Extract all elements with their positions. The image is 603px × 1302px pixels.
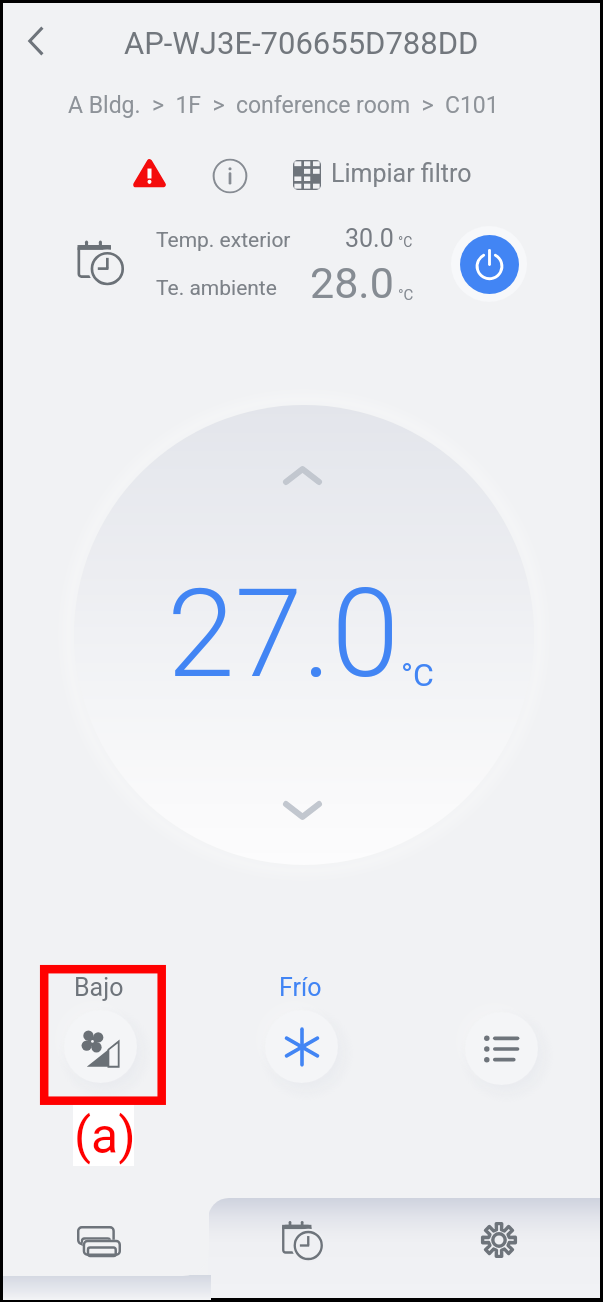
button[interactable]: Information: [206, 152, 254, 200]
staticText: °C: [398, 286, 414, 304]
staticText: Temp. exterior: [156, 228, 291, 253]
staticText: Frío: [279, 973, 322, 1002]
button[interactable]: Schedule: [209, 1198, 407, 1282]
staticText: 30.0: [345, 224, 394, 253]
button[interactable]: Settings: [407, 1198, 600, 1282]
button[interactable]: Power: [460, 235, 519, 294]
staticText: AP-WJ3E-706655D788DD: [124, 25, 479, 61]
button[interactable]: Unit control: [3, 1198, 209, 1282]
button[interactable]: Increase temperature: [267, 452, 337, 498]
staticText: Limpiar filtro: [331, 159, 472, 188]
button[interactable]: Operation mode: [265, 1010, 338, 1083]
staticText: 27.0: [167, 563, 400, 706]
staticText: Te. ambiente: [156, 276, 277, 301]
button[interactable]: More options: [465, 1012, 538, 1085]
staticText: Bajo: [74, 973, 124, 1002]
staticText: (a): [74, 1107, 136, 1166]
button[interactable]: Fan speed: [64, 1010, 137, 1083]
staticText: A Bldg. > 1F > conference room > C101: [68, 92, 499, 119]
staticText: °C: [398, 234, 413, 250]
button[interactable]: Back: [12, 18, 59, 64]
button[interactable]: Alert: [126, 150, 172, 196]
button[interactable]: Decrease temperature: [267, 787, 337, 833]
staticText: °C: [401, 656, 434, 694]
staticText: 28.0: [310, 258, 394, 308]
button[interactable]: Limpiar filtro: [293, 160, 471, 190]
button[interactable]: Schedule: [74, 235, 131, 292]
